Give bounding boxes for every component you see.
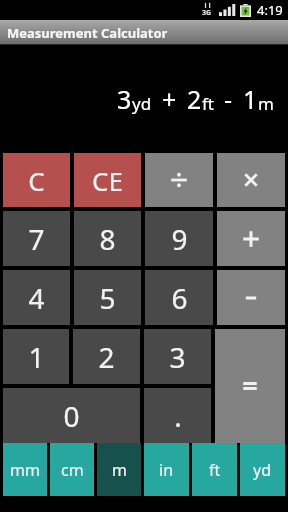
staticText: 5 xyxy=(99,279,116,317)
button[interactable]: mm xyxy=(3,443,47,496)
button[interactable]: in xyxy=(144,443,189,496)
button[interactable]: CE xyxy=(74,153,141,207)
button[interactable]: 6 xyxy=(145,270,213,325)
staticText: 3 xyxy=(117,82,132,116)
button[interactable]: 2 xyxy=(73,329,140,384)
button[interactable]: 4 xyxy=(3,270,70,325)
staticText: mm xyxy=(10,459,40,481)
staticText: 7 xyxy=(28,220,45,258)
button[interactable]: Minus xyxy=(217,270,285,325)
staticText: m xyxy=(112,459,127,481)
button[interactable]: Divide xyxy=(145,153,213,207)
staticText: yd xyxy=(253,459,272,481)
button[interactable]: Plus xyxy=(217,211,285,266)
button[interactable]: m xyxy=(97,443,141,496)
button[interactable]: 5 xyxy=(74,270,141,325)
staticText: 4 xyxy=(28,279,45,317)
staticText: + xyxy=(162,82,177,116)
staticText: Measurement Calculator xyxy=(7,24,168,42)
staticText: 6 xyxy=(171,279,188,317)
staticText: in xyxy=(159,459,174,481)
staticText: - xyxy=(224,82,233,116)
button[interactable]: 7 xyxy=(3,211,70,266)
staticText: 8 xyxy=(99,220,116,258)
button[interactable]: cm xyxy=(50,443,94,496)
button[interactable]: 9 xyxy=(145,211,213,266)
button[interactable]: 8 xyxy=(74,211,141,266)
button[interactable]: 1 xyxy=(3,329,69,384)
staticText: 3 xyxy=(169,338,186,376)
staticText: 3G xyxy=(202,8,212,18)
staticText: C xyxy=(28,163,45,198)
staticText: 2 xyxy=(98,338,115,376)
staticText: 4:19 xyxy=(257,1,283,19)
button[interactable]: C xyxy=(3,153,70,207)
staticText: m xyxy=(258,92,274,115)
staticText: 9 xyxy=(171,220,188,258)
button[interactable]: . xyxy=(144,388,211,443)
staticText: ft xyxy=(209,459,221,481)
button[interactable]: 3 xyxy=(144,329,211,384)
staticText: . xyxy=(174,397,182,435)
staticText: cm xyxy=(61,459,84,481)
staticText: 0 xyxy=(63,397,80,435)
staticText: 2 xyxy=(187,82,202,116)
staticText: CE xyxy=(92,163,123,198)
staticText: 1 xyxy=(28,338,45,376)
button[interactable]: ft xyxy=(192,443,237,496)
staticText: yd xyxy=(132,92,152,115)
button[interactable]: Equals xyxy=(215,329,285,443)
button[interactable]: Multiply xyxy=(217,153,285,207)
button[interactable]: yd xyxy=(240,443,285,496)
staticText: ft xyxy=(202,92,214,115)
button[interactable]: 0 xyxy=(3,388,140,443)
staticText: 1 xyxy=(243,82,258,116)
